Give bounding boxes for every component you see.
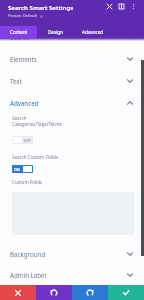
button[interactable]: Design [37,26,74,38]
staticText: Background [10,250,46,258]
button[interactable]: Advanced [0,92,144,114]
button[interactable]: Content [0,26,37,38]
staticText: Search Smart Settings [8,3,74,11]
staticText: Advanced [10,99,39,107]
staticText: Search Categories/Tags/Terms [12,115,62,128]
staticText: Admin Label [10,271,47,279]
button[interactable]: Close [104,1,115,12]
button[interactable]: Background [0,243,144,265]
staticText: Content [10,29,28,35]
staticText: Search [10,33,30,41]
button[interactable]: Toggle off [12,136,33,144]
button[interactable]: Undo [36,285,72,300]
staticText: Design [48,29,63,35]
button[interactable]: Advanced [74,26,111,38]
staticText: Preset: Default [8,13,38,19]
staticText: OFF [24,138,31,143]
button[interactable]: Search [0,26,144,48]
staticText: Elements [10,55,37,63]
button[interactable]: Layout [116,1,127,12]
staticText: ON [14,167,20,172]
button[interactable]: Save [108,285,144,300]
staticText: Custom Fields [12,179,43,185]
button[interactable]: More options [128,1,139,12]
button[interactable]: Admin Label [0,264,144,286]
staticText: Search Custom Fields [12,154,58,160]
button[interactable]: Elements [0,48,144,70]
staticText: Advanced [82,29,104,35]
staticText: Text [10,77,22,85]
button[interactable]: Text [0,70,144,92]
button[interactable]: Redo [72,285,108,300]
button[interactable]: Cancel [0,285,36,300]
button[interactable]: Toggle on [12,165,33,173]
